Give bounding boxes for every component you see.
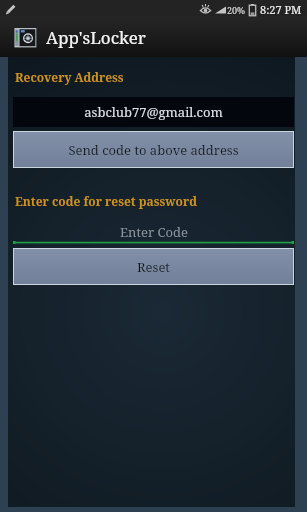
staticText: Reset xyxy=(137,258,170,276)
staticText: 20% xyxy=(227,4,246,16)
staticText: Enter Code xyxy=(120,223,188,239)
staticText: Send code to above address xyxy=(68,141,239,159)
button[interactable]: Send code to above address xyxy=(13,131,294,168)
staticText: asbclub77@gmail.com xyxy=(84,103,223,121)
button[interactable]: Reset xyxy=(13,248,294,285)
button[interactable]: Enter Code xyxy=(13,223,294,244)
button[interactable]: asbclub77@gmail.com xyxy=(13,97,294,127)
staticText: Recovery Address xyxy=(15,69,124,85)
staticText: App'sLocker xyxy=(46,26,146,49)
staticText: 8:27 PM xyxy=(260,2,302,17)
staticText: Enter code for reset password xyxy=(15,193,198,209)
